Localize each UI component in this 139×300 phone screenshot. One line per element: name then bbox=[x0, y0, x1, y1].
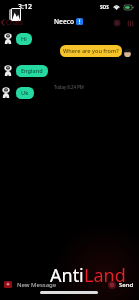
staticText: Uk bbox=[21, 89, 29, 97]
button[interactable]: Add media bbox=[4, 281, 12, 288]
button[interactable]: Back to Chats bbox=[0, 18, 26, 27]
button[interactable]: Where are you from? bbox=[60, 45, 122, 57]
staticText: Today 8:24 PM bbox=[54, 84, 84, 90]
button[interactable]: Send bbox=[108, 281, 134, 289]
staticText: Land bbox=[84, 263, 126, 288]
staticText: Send bbox=[119, 281, 134, 289]
staticText: Anti bbox=[50, 263, 84, 288]
button[interactable]: Uk bbox=[16, 87, 34, 99]
button[interactable]: Hi bbox=[16, 33, 32, 45]
staticText: Chats bbox=[6, 18, 24, 27]
staticText: Neeco bbox=[54, 17, 74, 26]
button[interactable]: More options bbox=[126, 18, 134, 29]
staticText: England bbox=[21, 67, 43, 75]
staticText: 3:12 bbox=[18, 2, 32, 12]
staticText: Where are you from? bbox=[63, 47, 119, 55]
button[interactable]: New Message bbox=[17, 281, 108, 289]
staticText: Hi bbox=[21, 35, 27, 43]
button[interactable]: Gift bbox=[113, 19, 121, 27]
button[interactable]: England bbox=[16, 65, 48, 77]
staticText: SOS bbox=[100, 4, 109, 10]
